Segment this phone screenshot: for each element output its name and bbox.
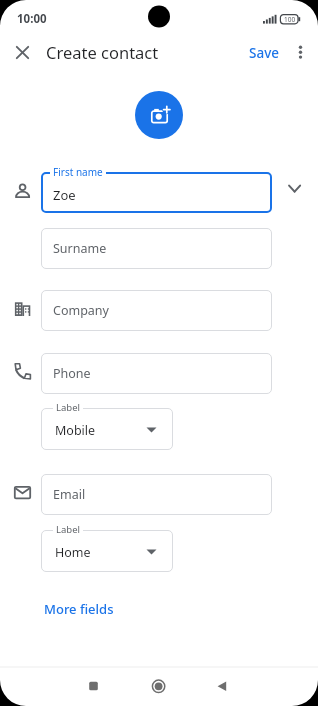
button[interactable]	[81, 674, 106, 699]
button[interactable]: Phone	[41, 353, 272, 394]
button[interactable]: Home	[41, 530, 173, 572]
staticText: Surname	[53, 240, 107, 257]
staticText: Phone	[53, 365, 91, 382]
staticText: Label	[56, 401, 80, 414]
staticText: Company	[53, 302, 109, 319]
button[interactable]	[210, 674, 235, 699]
staticText: Mobile	[55, 422, 96, 439]
staticText: More fields	[44, 600, 114, 618]
staticText: Create contact	[46, 41, 159, 63]
button[interactable]	[135, 91, 183, 139]
button[interactable]: Surname	[41, 228, 272, 269]
button[interactable]: Mobile	[41, 408, 173, 450]
button[interactable]: Company	[41, 290, 272, 331]
button[interactable]	[9, 39, 36, 66]
staticText: Zoe	[53, 186, 76, 204]
staticText: Home	[55, 544, 91, 561]
staticText: Label	[56, 523, 80, 536]
button[interactable]	[290, 42, 312, 64]
button[interactable]: Email	[41, 474, 272, 515]
staticText: 10:00	[17, 11, 47, 27]
button[interactable]	[146, 674, 171, 699]
staticText: Email	[53, 486, 86, 503]
staticText: First name	[53, 165, 103, 179]
button[interactable]: Zoe	[41, 172, 272, 213]
staticText: 100	[284, 15, 296, 24]
staticText: Save	[249, 44, 280, 62]
button[interactable]: Save	[249, 44, 280, 62]
button[interactable]: More fields	[44, 600, 114, 618]
